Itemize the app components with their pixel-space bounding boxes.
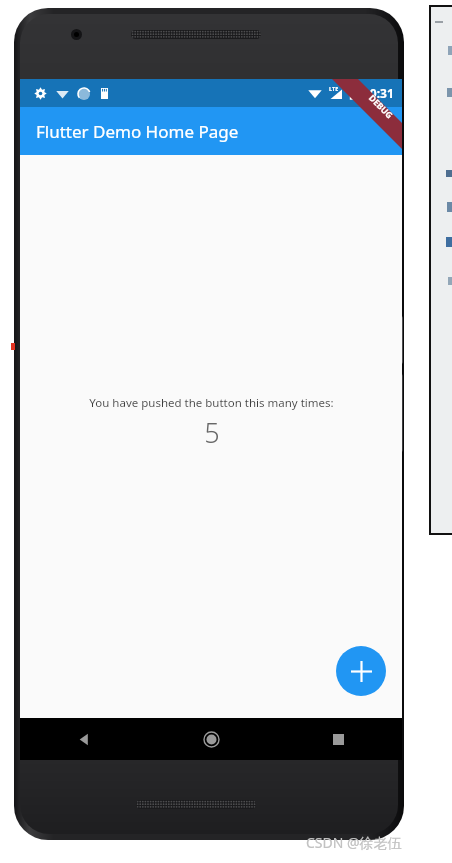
staticText: CSDN @徐老伍 bbox=[306, 833, 402, 852]
staticText: 10:31 bbox=[363, 85, 394, 101]
staticText: Flutter Demo Home Page bbox=[36, 120, 239, 143]
staticText: 5 bbox=[204, 414, 220, 451]
button[interactable]: Increment bbox=[336, 646, 386, 696]
button[interactable]: Home bbox=[148, 718, 275, 760]
staticText: You have pushed the button this many tim… bbox=[89, 395, 334, 411]
button[interactable]: Back bbox=[20, 718, 148, 760]
staticText: DEBUG bbox=[366, 92, 396, 122]
staticText: LTE bbox=[329, 85, 339, 92]
button[interactable]: Recent apps bbox=[275, 718, 402, 760]
